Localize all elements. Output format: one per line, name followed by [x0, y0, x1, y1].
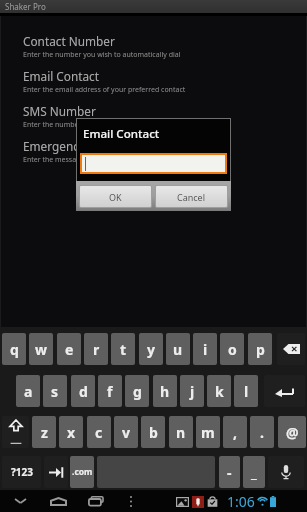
- button[interactable]: w: [29, 333, 53, 365]
- staticText: Emergency Message: [23, 138, 138, 154]
- staticText: @: [286, 423, 299, 442]
- button[interactable]: z: [32, 416, 56, 448]
- button[interactable]: _: [243, 456, 265, 488]
- button[interactable]: Voice input: [268, 456, 304, 488]
- button[interactable]: Contact Number: [0, 33, 307, 68]
- staticText: b: [149, 423, 158, 442]
- button[interactable]: b: [141, 416, 165, 448]
- staticText: d: [79, 382, 88, 401]
- staticText: u: [173, 340, 183, 359]
- staticText: .: [260, 423, 264, 442]
- button[interactable]: Menu: [113, 490, 149, 512]
- button[interactable]: h: [153, 375, 177, 407]
- button[interactable]: Recents: [77, 490, 113, 512]
- staticText: SMS Number: [23, 103, 96, 119]
- button[interactable]: Home: [40, 490, 77, 512]
- button[interactable]: c: [87, 416, 111, 448]
- staticText: a: [24, 382, 33, 401]
- button[interactable]: u: [166, 333, 190, 365]
- button[interactable]: l: [234, 375, 258, 407]
- button[interactable]: Email Contact: [0, 68, 307, 103]
- staticText: t: [120, 340, 127, 359]
- button[interactable]: .: [250, 416, 274, 448]
- button[interactable]: -: [219, 456, 240, 488]
- button[interactable]: [80, 153, 227, 174]
- button[interactable]: x: [59, 416, 83, 448]
- staticText: o: [228, 340, 237, 359]
- button[interactable]: Back: [0, 490, 40, 512]
- button[interactable]: Tab: [44, 456, 68, 488]
- button[interactable]: a: [16, 375, 40, 407]
- button[interactable]: i: [193, 333, 217, 365]
- button[interactable]: OK: [79, 185, 152, 208]
- button[interactable]: v: [114, 416, 138, 448]
- staticText: q: [10, 340, 19, 359]
- staticText: w: [35, 340, 47, 359]
- staticText: l: [244, 382, 249, 401]
- button[interactable]: e: [57, 333, 81, 365]
- button[interactable]: p: [248, 333, 272, 365]
- staticText: 1:06: [227, 492, 255, 511]
- staticText: r: [93, 340, 100, 359]
- button[interactable]: Backspace: [277, 333, 305, 365]
- button[interactable]: s: [43, 375, 67, 407]
- button[interactable]: n: [169, 416, 193, 448]
- staticText: j: [190, 382, 195, 401]
- staticText: x: [67, 423, 76, 442]
- staticText: z: [41, 423, 48, 442]
- staticText: f: [107, 382, 113, 401]
- staticText: Contact Number: [23, 33, 115, 49]
- staticText: Enter the number you wish to automatical…: [23, 50, 181, 60]
- button[interactable]: m: [196, 416, 220, 448]
- button[interactable]: Emergency Message: [0, 138, 307, 173]
- staticText: e: [65, 340, 74, 359]
- button[interactable]: q: [2, 333, 26, 365]
- button[interactable]: t: [111, 333, 135, 365]
- button[interactable]: Enter: [264, 375, 305, 407]
- button[interactable]: d: [71, 375, 95, 407]
- staticText: Email Contact: [83, 126, 160, 142]
- staticText: h: [160, 382, 170, 401]
- button[interactable]: r: [84, 333, 108, 365]
- staticText: -: [227, 463, 232, 482]
- staticText: _: [251, 463, 257, 482]
- staticText: Enter the email address of your preferre…: [23, 85, 186, 95]
- button[interactable]: @: [278, 416, 306, 448]
- staticText: OK: [109, 191, 122, 203]
- staticText: Enter the number to which you wish to se…: [23, 120, 197, 130]
- staticText: i: [203, 340, 208, 359]
- button[interactable]: y: [139, 333, 163, 365]
- staticText: y: [147, 340, 155, 359]
- button[interactable]: ?123: [2, 456, 41, 488]
- staticText: k: [215, 382, 224, 401]
- staticText: g: [133, 382, 142, 401]
- staticText: ,: [233, 423, 237, 442]
- button[interactable]: f: [98, 375, 122, 407]
- staticText: p: [256, 340, 265, 359]
- staticText: m: [201, 423, 215, 442]
- button[interactable]: ,: [223, 416, 247, 448]
- button[interactable]: o: [220, 333, 244, 365]
- staticText: v: [122, 423, 130, 442]
- staticText: s: [51, 382, 59, 401]
- button[interactable]: SMS Number: [0, 103, 307, 138]
- staticText: Shaker Pro: [5, 1, 46, 12]
- staticText: Enter the message you wish to send in an…: [23, 155, 199, 165]
- staticText: ?123: [11, 465, 33, 479]
- button[interactable]: .com: [70, 456, 94, 488]
- button[interactable]: j: [180, 375, 204, 407]
- button[interactable]: k: [207, 375, 231, 407]
- staticText: Email Contact: [23, 68, 100, 84]
- button[interactable]: g: [125, 375, 149, 407]
- staticText: c: [95, 423, 103, 442]
- staticText: Cancel: [177, 191, 206, 203]
- staticText: n: [176, 423, 186, 442]
- button[interactable]: Shift: [2, 416, 29, 448]
- button[interactable]: Cancel: [155, 185, 228, 208]
- staticText: .com: [72, 466, 93, 478]
